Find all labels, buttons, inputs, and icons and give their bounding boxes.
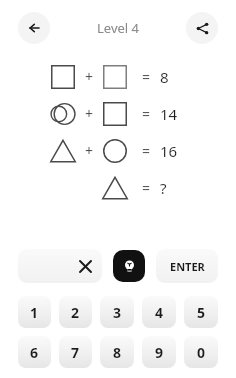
staticText: ? xyxy=(160,178,167,198)
button[interactable]: Share xyxy=(186,12,218,44)
button[interactable]: 2 xyxy=(59,296,92,328)
staticText: 16 xyxy=(160,141,178,161)
staticText: 7 xyxy=(71,343,80,362)
staticText: = xyxy=(142,67,151,86)
button[interactable]: Back xyxy=(18,12,50,44)
button[interactable]: 5 xyxy=(184,296,218,328)
staticText: 2 xyxy=(71,303,80,322)
staticText: 5 xyxy=(197,303,206,322)
button[interactable]: 0 xyxy=(184,336,218,368)
button[interactable]: 8 xyxy=(100,336,134,368)
staticText: Level 4 xyxy=(97,19,139,37)
button[interactable]: 9 xyxy=(142,336,176,368)
staticText: ENTER xyxy=(170,259,205,274)
staticText: = xyxy=(142,104,151,123)
staticText: 6 xyxy=(30,343,39,362)
staticText: 9 xyxy=(155,343,164,362)
staticText: + xyxy=(85,104,94,123)
button[interactable]: Hint xyxy=(113,250,145,282)
button[interactable]: Clear xyxy=(18,249,102,283)
staticText: 8 xyxy=(160,67,169,87)
button[interactable]: 1 xyxy=(18,296,51,328)
staticText: 0 xyxy=(197,343,206,362)
staticText: = xyxy=(142,141,151,160)
staticText: 1 xyxy=(30,303,39,322)
button[interactable]: 3 xyxy=(100,296,134,328)
staticText: 3 xyxy=(113,303,122,322)
staticText: 8 xyxy=(113,343,122,362)
button[interactable]: 6 xyxy=(18,336,51,368)
staticText: 14 xyxy=(160,104,178,124)
button[interactable]: 4 xyxy=(142,296,176,328)
button[interactable]: 7 xyxy=(59,336,92,368)
staticText: + xyxy=(85,67,94,86)
staticText: = xyxy=(142,178,151,197)
button[interactable]: ENTER xyxy=(156,249,218,283)
staticText: + xyxy=(85,141,94,160)
staticText: 4 xyxy=(155,303,164,322)
